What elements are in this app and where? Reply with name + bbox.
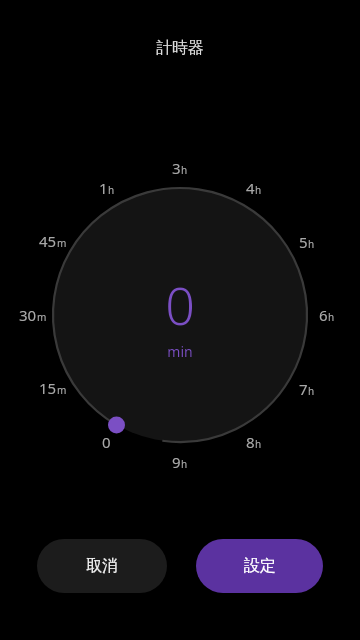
- staticText: 0: [102, 432, 111, 452]
- button[interactable]: Timer duration dial: [0, 0, 360, 640]
- staticText: 取消: [86, 556, 118, 576]
- staticText: m: [37, 310, 47, 324]
- staticText: h: [255, 183, 262, 197]
- staticText: 設定: [244, 556, 276, 576]
- staticText: min: [167, 342, 193, 361]
- staticText: 0: [165, 269, 195, 340]
- staticText: h: [108, 183, 115, 197]
- staticText: 9: [172, 452, 181, 472]
- staticText: m: [57, 383, 67, 397]
- button[interactable]: 取消: [37, 539, 167, 593]
- staticText: m: [57, 236, 67, 250]
- staticText: 6: [319, 305, 328, 325]
- staticText: 5: [299, 232, 308, 252]
- button[interactable]: 設定: [196, 539, 323, 593]
- staticText: h: [328, 310, 335, 324]
- staticText: h: [181, 163, 188, 177]
- staticText: 4: [246, 178, 255, 198]
- staticText: h: [255, 437, 262, 451]
- staticText: h: [308, 384, 315, 398]
- staticText: h: [308, 237, 315, 251]
- staticText: 30: [19, 305, 37, 325]
- staticText: 1: [99, 178, 108, 198]
- staticText: 45: [39, 231, 57, 251]
- staticText: 7: [299, 379, 308, 399]
- staticText: 8: [246, 432, 255, 452]
- staticText: 計時器: [156, 38, 204, 58]
- staticText: 15: [39, 378, 57, 398]
- staticText: h: [181, 457, 188, 471]
- staticText: 3: [172, 158, 181, 178]
